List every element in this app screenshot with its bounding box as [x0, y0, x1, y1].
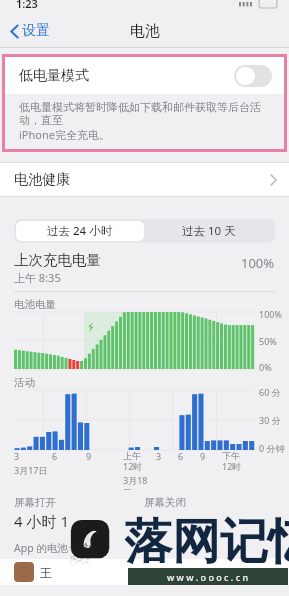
button[interactable]: 过去 10 天 [144, 221, 273, 241]
button[interactable]: 低电量模式 [5, 57, 284, 94]
staticText: 6 [52, 450, 58, 462]
staticText: 3 [14, 450, 20, 462]
staticText: 屏幕关闭 [144, 496, 186, 509]
staticText: 过去 24 小时 [47, 223, 113, 239]
staticText: 落网记忆 [124, 512, 289, 572]
staticText: 30 分 [259, 414, 281, 426]
staticText: 电池 [130, 22, 160, 41]
staticText: 低电量模式 [19, 67, 89, 85]
staticText: 9 [86, 450, 92, 462]
staticText: 0 分钟 [259, 442, 285, 454]
staticText: 100% [241, 254, 275, 272]
staticText: 0% [259, 361, 272, 373]
staticText: 设置 [22, 22, 50, 40]
staticText: 王 [40, 565, 52, 580]
staticText: 电池电量 [14, 298, 56, 311]
staticText: 活动 [14, 376, 35, 389]
staticText: 50% [259, 335, 277, 347]
staticText: 9 [200, 450, 206, 462]
staticText: 3月17日 [14, 464, 48, 476]
button[interactable]: 电池健康 [0, 163, 289, 196]
staticText: 上次充电电量 [14, 251, 101, 269]
staticText: 3月18日 [123, 474, 156, 490]
button[interactable]: 低电量模式开关 [234, 65, 272, 87]
staticText: 电池健康 [14, 171, 70, 189]
staticText: 上午 12时 [123, 450, 143, 472]
staticText: App 的电池 [14, 541, 68, 555]
staticText: 下午 12时 [222, 450, 242, 472]
button[interactable]: 过去 24 小时 [16, 221, 144, 241]
staticText: 低电量模式将暂时降低如下载和邮件获取等后台活动，直至 iPhone完全充电。 [19, 100, 272, 142]
staticText: 过去 10 天 [182, 223, 236, 239]
staticText: 屏幕打开 [14, 496, 56, 509]
staticText: 1:23 [16, 0, 38, 10]
staticText: 100% [259, 308, 282, 320]
staticText: 4 小时 1 [14, 511, 69, 531]
staticText: w w w . o o o c . c n [167, 571, 249, 583]
staticText: 60 分 [259, 386, 281, 398]
button[interactable]: 设置 [0, 18, 58, 44]
staticText: 6 [178, 450, 184, 462]
staticText: 3 [156, 450, 162, 462]
staticText: 上午 8:35 [14, 270, 61, 285]
